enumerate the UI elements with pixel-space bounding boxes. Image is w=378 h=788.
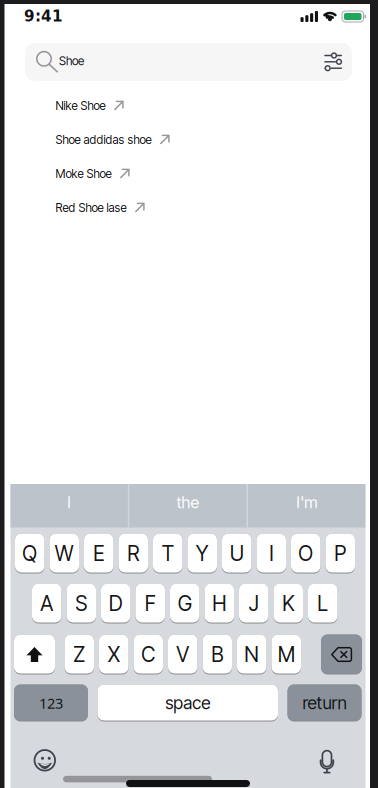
staticText: 9:41 (24, 7, 63, 25)
button[interactable]: H (204, 583, 234, 623)
button[interactable]: Nike Shoe (55, 89, 124, 123)
staticText: Q (22, 541, 37, 566)
staticText: T (162, 541, 174, 566)
button[interactable]: I (256, 533, 286, 573)
button[interactable]: V (168, 634, 197, 674)
staticText: Moke Shoe (55, 167, 111, 181)
staticText: K (282, 591, 294, 616)
button[interactable]: Red Shoe lase (55, 191, 145, 225)
staticText: R (127, 541, 139, 566)
staticText: S (75, 591, 87, 616)
button[interactable]: Delete (321, 634, 362, 674)
staticText: V (176, 642, 189, 667)
button[interactable]: P (325, 533, 355, 573)
staticText: Z (73, 642, 85, 667)
staticText: W (55, 541, 74, 566)
button[interactable]: Z (64, 634, 94, 674)
button[interactable]: F (135, 583, 165, 623)
staticText: Nike Shoe (55, 99, 105, 113)
button[interactable]: I'm (248, 484, 365, 527)
button[interactable]: M (271, 634, 301, 674)
button[interactable]: Dictation (320, 750, 334, 774)
button[interactable]: N (237, 634, 266, 674)
staticText: B (211, 642, 223, 667)
staticText: Shoe (59, 54, 84, 68)
button[interactable]: C (133, 634, 163, 674)
button[interactable]: K (273, 583, 303, 623)
button[interactable]: I (10, 484, 128, 527)
staticText: I (269, 541, 273, 566)
button[interactable]: R (118, 533, 148, 573)
button[interactable]: Filters (325, 50, 343, 73)
staticText: A (40, 591, 53, 616)
button[interactable]: space (97, 684, 278, 721)
button[interactable]: S (66, 583, 96, 623)
staticText: G (178, 591, 192, 616)
button[interactable]: D (101, 583, 130, 623)
button[interactable]: Y (187, 533, 217, 573)
staticText: C (141, 642, 155, 667)
button[interactable]: T (153, 533, 182, 573)
staticText: U (230, 541, 244, 566)
staticText: N (244, 642, 259, 667)
button[interactable]: Moke Shoe (55, 157, 130, 191)
button[interactable]: B (202, 634, 232, 674)
staticText: Red Shoe lase (55, 201, 126, 215)
staticText: H (212, 591, 226, 616)
button[interactable]: Q (15, 533, 44, 573)
button[interactable]: Shoe addidas shoe (55, 123, 170, 157)
staticText: M (278, 642, 295, 667)
button[interactable]: 123 (14, 684, 88, 721)
button[interactable]: J (239, 583, 268, 623)
staticText: J (249, 591, 259, 616)
button[interactable]: E (84, 533, 113, 573)
staticText: I (67, 492, 71, 512)
staticText: the (176, 492, 199, 512)
button[interactable]: O (291, 533, 320, 573)
staticText: 123 (39, 693, 63, 713)
button[interactable]: the (129, 484, 247, 527)
button[interactable]: Shift (14, 634, 55, 674)
staticText: F (145, 591, 156, 616)
button[interactable]: return (287, 684, 361, 721)
staticText: return (302, 692, 346, 714)
staticText: Y (196, 541, 209, 566)
button[interactable]: Search (25, 43, 352, 81)
staticText: X (108, 642, 120, 667)
button[interactable]: A (32, 583, 61, 623)
button[interactable]: X (99, 634, 128, 674)
staticText: I'm (296, 492, 317, 512)
staticText: D (109, 591, 123, 616)
button[interactable]: W (49, 533, 79, 573)
staticText: space (165, 692, 210, 714)
staticText: Shoe addidas shoe (55, 133, 151, 147)
staticText: L (317, 591, 328, 616)
staticText: E (93, 541, 104, 566)
button[interactable]: G (170, 583, 199, 623)
button[interactable]: U (222, 533, 251, 573)
button[interactable]: L (308, 583, 337, 623)
staticText: P (334, 541, 346, 566)
staticText: O (298, 541, 313, 566)
button[interactable]: Emoji (33, 749, 56, 772)
